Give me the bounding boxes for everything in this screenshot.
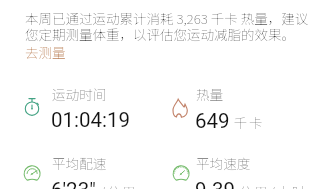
staticText: 9.39 公里/小时 xyxy=(195,179,308,189)
staticText: 01:04:19 xyxy=(51,110,131,132)
staticText: 平均速度 xyxy=(196,157,251,172)
staticText: 运动时间 xyxy=(52,88,107,103)
other: Duration xyxy=(24,98,44,118)
button[interactable]: 去测量 xyxy=(25,45,66,61)
button[interactable]: Average pace xyxy=(23,157,110,179)
staticText: 热量 xyxy=(196,88,224,103)
other: Calories xyxy=(172,98,192,118)
staticText: 本周已通过运动累计消耗 3,263 千卡 热量，建议 您定期测量体重，以评估您运… xyxy=(25,11,309,43)
button[interactable]: Calories xyxy=(172,88,242,110)
button[interactable]: Duration xyxy=(23,88,103,110)
other: Average pace xyxy=(23,165,43,185)
staticText: 平均配速 xyxy=(52,157,107,172)
other: Average speed xyxy=(172,165,192,185)
staticText: 6'23" /公里 xyxy=(51,179,138,189)
staticText: 去测量 xyxy=(25,45,66,61)
button[interactable]: Average speed xyxy=(172,157,285,179)
staticText: 649 千卡 xyxy=(195,110,265,132)
